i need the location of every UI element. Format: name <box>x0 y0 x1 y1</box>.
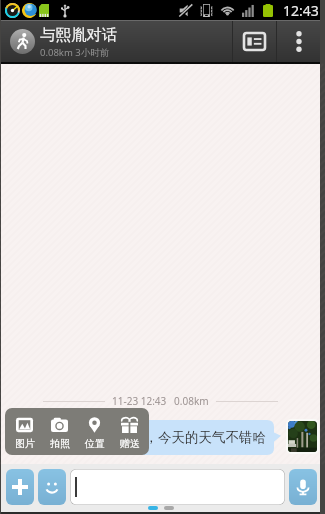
button[interactable]: Add attachment <box>6 469 34 505</box>
staticText: 位置 <box>85 437 105 450</box>
button[interactable]: Contact card <box>233 21 276 62</box>
button[interactable]: 嗨，今天的天气不错哈 <box>123 420 281 455</box>
button[interactable]: 位置 <box>77 408 112 455</box>
button[interactable]: 拍照 <box>42 408 77 455</box>
button[interactable]: Contact avatar <box>286 419 319 454</box>
staticText: 0.08km 3小时前 <box>40 46 110 59</box>
button[interactable]: Voice message <box>289 469 317 505</box>
staticText: 赠送 <box>120 437 140 450</box>
button[interactable]: 赠送 <box>112 408 147 455</box>
staticText: 12:43 <box>283 1 319 20</box>
button[interactable]: More options <box>277 21 320 62</box>
button[interactable]: Emoji <box>38 469 66 505</box>
button[interactable] <box>70 469 285 505</box>
button[interactable]: 图片 <box>7 408 42 455</box>
staticText: 图片 <box>15 437 35 450</box>
button[interactable]: 与熙胤对话 <box>1 21 232 62</box>
staticText: 嗨，今天的天气不错哈 <box>131 429 266 446</box>
staticText: 与熙胤对话 <box>40 25 118 45</box>
staticText: 拍照 <box>50 437 70 450</box>
staticText: 11-23 12:43 0.08km <box>112 394 209 408</box>
